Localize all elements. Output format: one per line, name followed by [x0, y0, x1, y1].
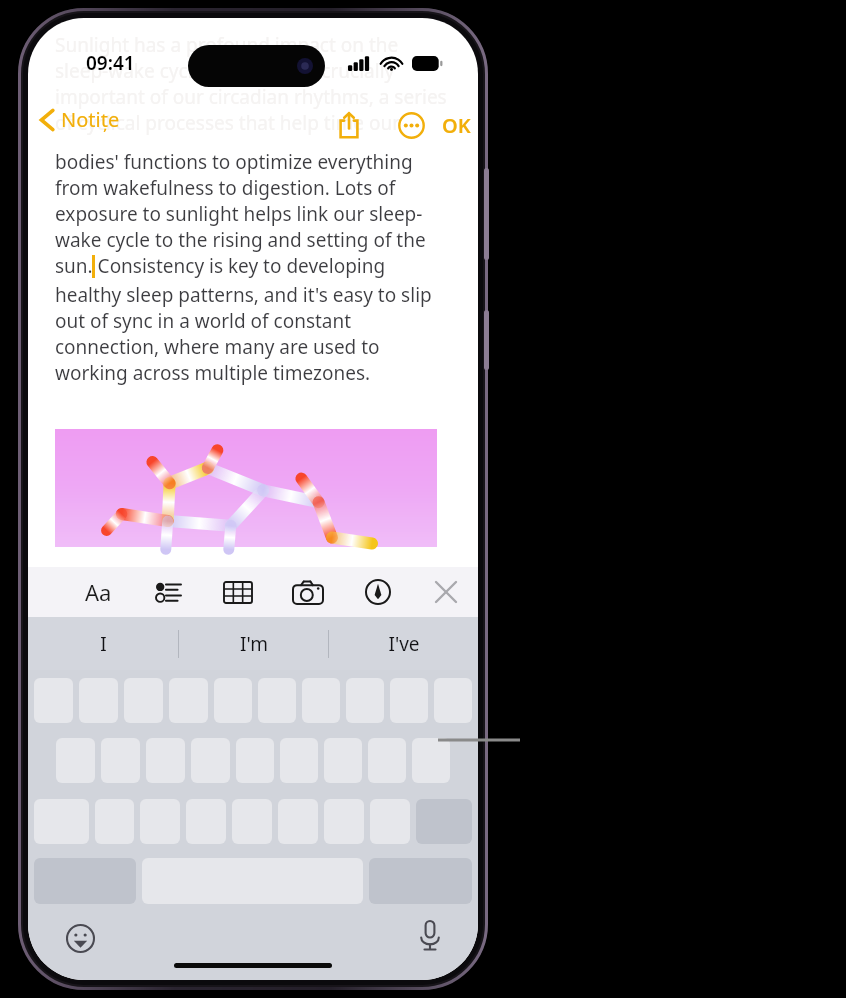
staticText: 09:41 — [86, 50, 135, 76]
staticText: I've — [388, 631, 420, 657]
staticText: exposure to sunlight helps link our slee… — [55, 201, 423, 227]
button[interactable]: OK — [436, 104, 477, 147]
staticText: I — [100, 631, 107, 657]
button[interactable]: Notițe — [36, 100, 124, 139]
staticText: OK — [442, 112, 471, 139]
staticText: Sunlight has a profound impact on the — [55, 32, 399, 58]
button[interactable]: Camera — [278, 567, 338, 617]
button[interactable]: I'm — [179, 617, 328, 670]
button[interactable]: More options — [390, 104, 432, 146]
staticText: important of our circadian rhythms, a se… — [55, 84, 447, 110]
button[interactable]: Insert table — [208, 567, 268, 617]
button[interactable]: Emoji — [58, 916, 102, 960]
staticText: out of sync in a world of constant — [55, 308, 352, 334]
staticText: sun. Consistency is key to developing — [55, 253, 386, 279]
staticText: Aa — [85, 577, 112, 607]
staticText: of cyclical processes that help time our — [55, 110, 401, 136]
button[interactable]: Close toolbar — [418, 567, 474, 617]
button[interactable]: Markup — [348, 567, 408, 617]
staticText: working across multiple timezones. — [55, 360, 371, 386]
staticText: connection, where many are used to — [55, 334, 380, 360]
button[interactable]: I've — [329, 617, 478, 670]
staticText: I'm — [240, 631, 268, 657]
button[interactable]: Share — [328, 104, 370, 146]
button[interactable]: I — [28, 617, 178, 670]
staticText: Notițe — [61, 106, 120, 133]
staticText: from wakefulness to digestion. Lots of — [55, 175, 396, 201]
staticText: healthy sleep patterns, and it's easy to… — [55, 282, 432, 308]
button[interactable]: Dictation — [408, 914, 452, 958]
staticText: bodies' functions to optimize everything — [55, 149, 413, 175]
button[interactable]: Key — [412, 738, 450, 783]
button[interactable]: Text format — [68, 567, 128, 617]
button[interactable]: Checklist — [138, 567, 198, 617]
staticText: wake cycle to the rising and setting of … — [55, 227, 426, 253]
staticText: sleep-wake cycle, and is most crucially — [55, 58, 395, 84]
